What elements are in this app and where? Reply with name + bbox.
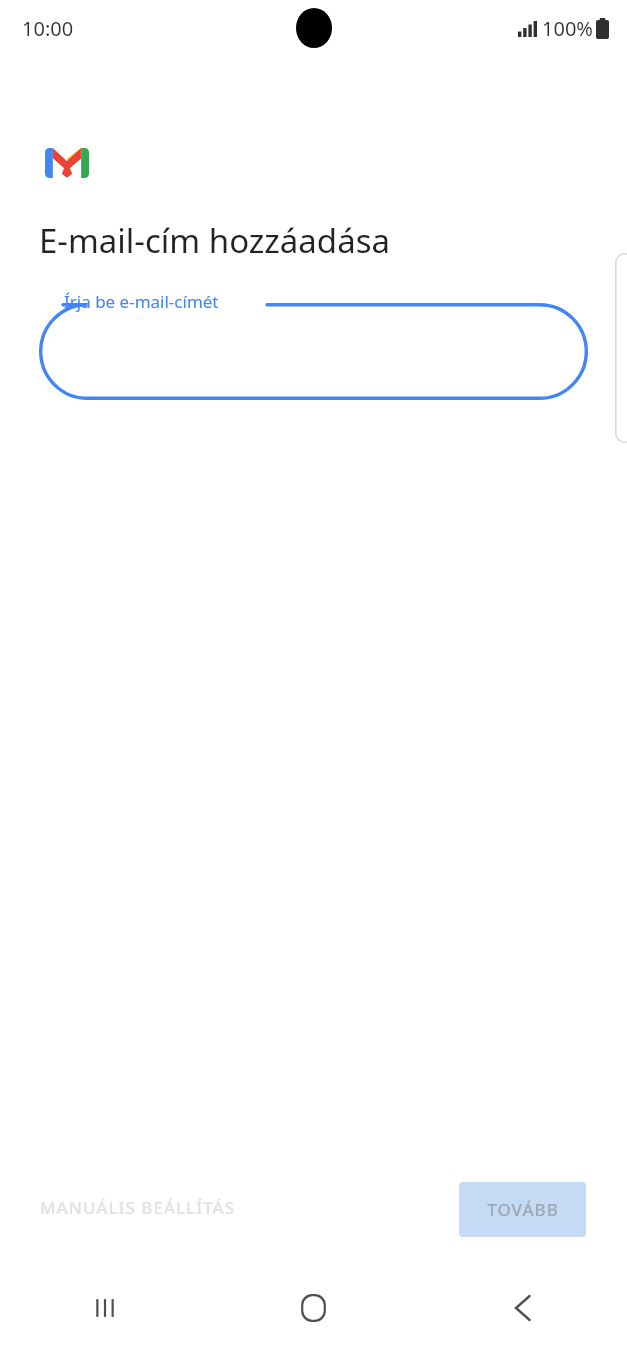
button[interactable]: Edge panel handle bbox=[615, 253, 627, 443]
staticText: 10:00 bbox=[22, 15, 74, 42]
button[interactable]: Home bbox=[209, 1270, 418, 1346]
button[interactable]: MANUÁLIS BEÁLLÍTÁS bbox=[22, 1184, 254, 1231]
button[interactable]: TOVÁBB bbox=[459, 1182, 586, 1237]
staticText: 100% bbox=[542, 15, 593, 42]
staticText: TOVÁBB bbox=[487, 1198, 559, 1221]
button[interactable]: Írja be e-mail-címét bbox=[39, 303, 588, 400]
staticText: MANUÁLIS BEÁLLÍTÁS bbox=[40, 1196, 236, 1219]
button[interactable]: Back bbox=[418, 1270, 627, 1346]
staticText: E-mail-cím hozzáadása bbox=[39, 218, 390, 263]
staticText: Írja be e-mail-címét bbox=[64, 290, 219, 313]
button[interactable]: Recent apps bbox=[0, 1270, 209, 1346]
